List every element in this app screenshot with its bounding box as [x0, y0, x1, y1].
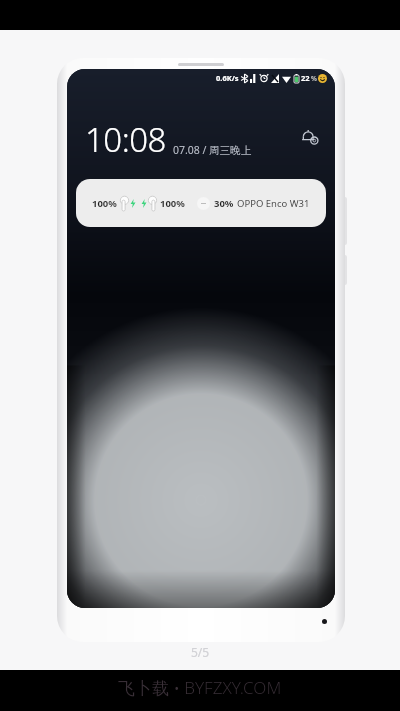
- staticText: 07.08 / 周三晚上: [173, 143, 252, 157]
- staticText: 10:08: [85, 117, 166, 162]
- staticText: 飞卜载 • BYFZXY.COM: [118, 676, 282, 699]
- staticText: 22: [301, 73, 310, 83]
- staticText: 5/5: [191, 644, 210, 660]
- staticText: 0.6K/s: [216, 73, 239, 83]
- staticText: 100%: [160, 197, 185, 210]
- staticText: %: [311, 74, 317, 83]
- staticText: 100%: [92, 197, 117, 210]
- button[interactable]: Notification settings: [295, 122, 325, 152]
- staticText: 30%: [214, 197, 234, 210]
- staticText: OPPO Enco W31: [237, 197, 310, 210]
- button[interactable]: 100%: [76, 179, 326, 227]
